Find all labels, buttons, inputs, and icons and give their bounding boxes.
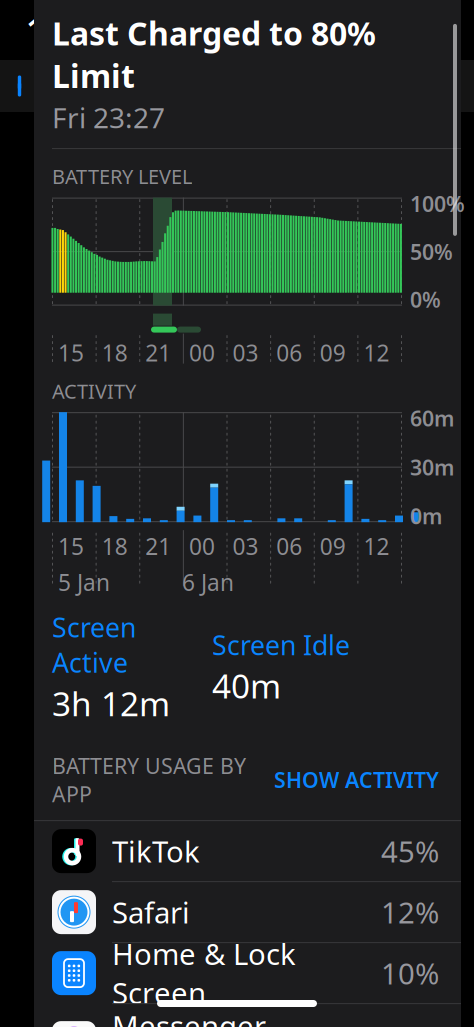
staticText: Settings — [34, 66, 147, 105]
button[interactable]: Messenger — [34, 1004, 461, 1027]
staticText: 03 — [232, 338, 258, 368]
staticText: 06 — [276, 338, 302, 368]
staticText: BATTERY USAGE BY APP — [52, 751, 246, 808]
staticText: 60m — [410, 404, 454, 432]
staticText: 09 — [320, 531, 346, 561]
button[interactable]: SHOW ACTIVITY — [274, 766, 439, 794]
staticText: Screen Active — [52, 609, 136, 680]
staticText: 6 Jan — [182, 567, 234, 597]
staticText: 14:55 — [26, 8, 111, 52]
staticText: 12 — [363, 338, 389, 368]
staticText: 0m — [410, 502, 442, 530]
staticText: 100% — [410, 190, 465, 218]
staticText: BATTERY LEVEL — [52, 163, 192, 190]
staticText: 00 — [189, 531, 215, 561]
staticText: 10% — [381, 954, 439, 993]
staticText: 03 — [232, 531, 258, 561]
button[interactable]: TikTok — [34, 821, 461, 882]
staticText: Last Charged to 80% Limit — [52, 12, 376, 97]
button[interactable]: Safari — [34, 882, 461, 943]
staticText: 06 — [276, 531, 302, 561]
button[interactable]: Home & Lock Screen — [34, 943, 461, 1004]
staticText: 40m — [212, 663, 281, 708]
staticText: Screen Idle — [212, 627, 350, 662]
staticText: 45% — [381, 832, 439, 871]
staticText: 15 — [58, 531, 84, 561]
staticText: 0% — [410, 285, 441, 314]
staticText: 09 — [320, 338, 346, 368]
staticText: Home & Lock Screen — [112, 934, 296, 1012]
staticText: 12% — [381, 893, 439, 932]
staticText: 18 — [102, 531, 128, 561]
staticText: 15 — [58, 338, 84, 368]
staticText: TikTok — [112, 832, 200, 871]
staticText: Messenger — [112, 1006, 266, 1027]
staticText: 21 — [145, 338, 171, 368]
staticText: 5 Jan — [58, 567, 110, 597]
staticText: 12 — [363, 531, 389, 561]
button[interactable]: Settings — [4, 60, 157, 111]
staticText: 3h 12m — [52, 681, 170, 725]
staticText: Fri 23:27 — [52, 99, 165, 136]
staticText: 21 — [145, 531, 171, 561]
staticText: 18 — [102, 338, 128, 368]
staticText: 00 — [189, 338, 215, 368]
staticText: 50% — [410, 237, 453, 266]
staticText: Safari — [112, 893, 190, 932]
staticText: ACTIVITY — [52, 378, 136, 404]
staticText: SHOW ACTIVITY — [274, 766, 439, 794]
staticText: 30m — [410, 453, 454, 481]
